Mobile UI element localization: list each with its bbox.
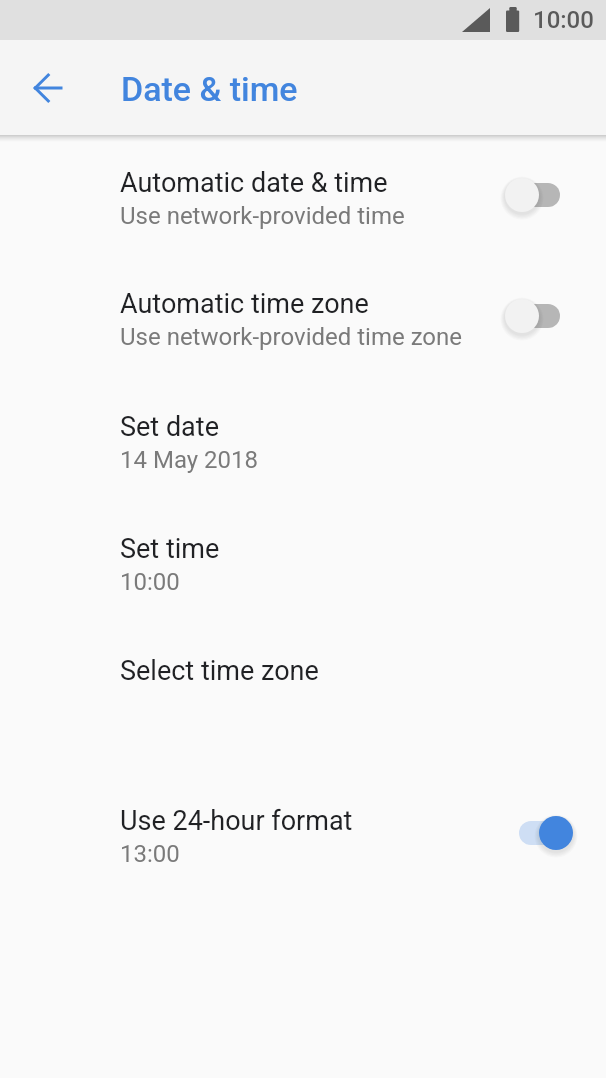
staticText: Use network-provided time zone bbox=[120, 323, 463, 351]
other: Battery full bbox=[506, 7, 520, 32]
staticText: 13:00 bbox=[120, 840, 180, 868]
other: Cellular signal bbox=[462, 8, 490, 32]
staticText: Set date bbox=[120, 411, 219, 443]
staticText: Use network-provided time bbox=[120, 202, 405, 230]
button[interactable]: Automatic date & time, off bbox=[495, 168, 583, 226]
staticText: Select time zone bbox=[120, 655, 319, 687]
staticText: Set time bbox=[120, 533, 220, 565]
button[interactable]: Select time zone bbox=[0, 606, 606, 728]
staticText: Use 24-hour format bbox=[120, 805, 353, 837]
button[interactable]: Set date bbox=[0, 362, 606, 484]
button[interactable]: Automatic time zone bbox=[0, 239, 606, 361]
staticText: 10:00 bbox=[533, 6, 594, 34]
staticText: Automatic date & time bbox=[120, 167, 388, 199]
staticText: Automatic time zone bbox=[120, 288, 369, 320]
button[interactable]: Navigate up bbox=[14, 55, 80, 121]
button[interactable]: Use 24-hour format bbox=[0, 756, 606, 878]
button[interactable]: Set time bbox=[0, 484, 606, 606]
button[interactable]: Automatic time zone, off bbox=[495, 289, 583, 347]
button[interactable]: Use 24-hour format, on bbox=[495, 806, 583, 864]
button[interactable]: Automatic date & time bbox=[0, 118, 606, 240]
staticText: Date & time bbox=[121, 69, 298, 109]
staticText: 10:00 bbox=[120, 568, 180, 596]
staticText: 14 May 2018 bbox=[120, 446, 259, 474]
